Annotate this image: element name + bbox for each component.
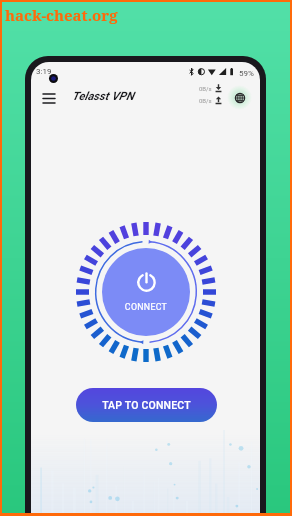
staticText: CONNECT (102, 302, 190, 312)
staticText: 0B/s (199, 97, 212, 104)
staticText: 0B/s (199, 85, 212, 92)
staticText: 3:19 (36, 67, 52, 76)
staticText: hack-cheat.org (5, 5, 118, 25)
staticText: TAP TO CONNECT (102, 399, 191, 411)
button[interactable]: Open navigation menu (37, 87, 60, 110)
staticText: Telasst VPN (72, 89, 134, 102)
button[interactable]: Select server location (227, 85, 252, 110)
staticText: 59% (239, 69, 254, 78)
button[interactable]: Connect (102, 248, 190, 336)
button[interactable]: TAP TO CONNECT (76, 388, 217, 422)
